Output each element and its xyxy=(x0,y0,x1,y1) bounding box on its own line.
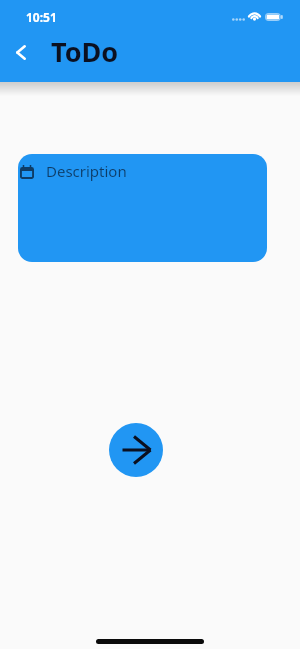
button[interactable]: Description xyxy=(18,154,267,262)
staticText: 10:51 xyxy=(26,9,57,25)
button[interactable]: Back xyxy=(3,34,39,70)
button[interactable]: Next xyxy=(109,423,163,477)
staticText: ToDo xyxy=(51,33,119,70)
staticText: Description xyxy=(46,161,127,181)
